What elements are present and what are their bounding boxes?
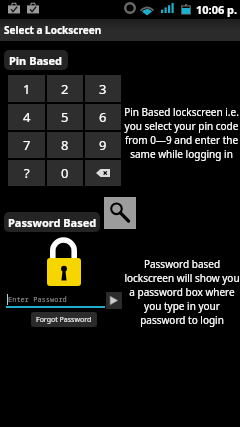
staticText: 10:06 p. xyxy=(196,2,238,17)
staticText: 3 xyxy=(99,80,107,98)
staticText: 2 xyxy=(61,80,69,98)
staticText: 5 xyxy=(61,108,69,126)
button[interactable]: 9 xyxy=(85,132,121,158)
button[interactable]: 1 xyxy=(8,75,45,102)
staticText: 0 xyxy=(61,164,69,182)
staticText: 1 xyxy=(23,80,31,98)
button[interactable]: 3 xyxy=(85,75,121,102)
staticText: Forgot Password xyxy=(36,315,92,325)
staticText: 7 xyxy=(23,136,31,154)
button[interactable]: Password lockscreen preview xyxy=(46,238,82,288)
button[interactable]: Password Based xyxy=(4,212,100,232)
button[interactable]: 8 xyxy=(47,132,83,158)
staticText: Pin Based xyxy=(9,53,63,68)
staticText: Pin Based lockscreen i.e. you select you… xyxy=(123,105,240,161)
button[interactable]: 2 xyxy=(47,75,83,102)
staticText: 4 xyxy=(23,108,31,126)
button[interactable]: ? xyxy=(8,160,45,186)
button[interactable]: 0 xyxy=(47,160,83,186)
button[interactable]: Enter Password xyxy=(6,292,105,308)
button[interactable]: Search xyxy=(104,197,136,229)
button[interactable]: Pin Based xyxy=(4,50,68,70)
staticText: Enter Password xyxy=(8,295,67,305)
staticText: 6 xyxy=(99,108,107,126)
staticText: Password based lockscreen will show you … xyxy=(124,257,240,327)
button[interactable]: 6 xyxy=(85,104,121,130)
button[interactable]: 5 xyxy=(47,104,83,130)
staticText: ? xyxy=(24,164,30,182)
staticText: Password Based xyxy=(8,215,97,230)
button[interactable]: 7 xyxy=(8,132,45,158)
button[interactable]: Submit password xyxy=(106,292,122,309)
button[interactable]: Forgot Password xyxy=(31,312,97,327)
button[interactable]: 4 xyxy=(8,104,45,130)
staticText: 9 xyxy=(99,136,107,154)
button[interactable]: Delete xyxy=(85,160,121,186)
staticText: Select a Lockscreen xyxy=(4,23,102,37)
staticText: 8 xyxy=(61,136,69,154)
other: Delete xyxy=(96,169,110,177)
